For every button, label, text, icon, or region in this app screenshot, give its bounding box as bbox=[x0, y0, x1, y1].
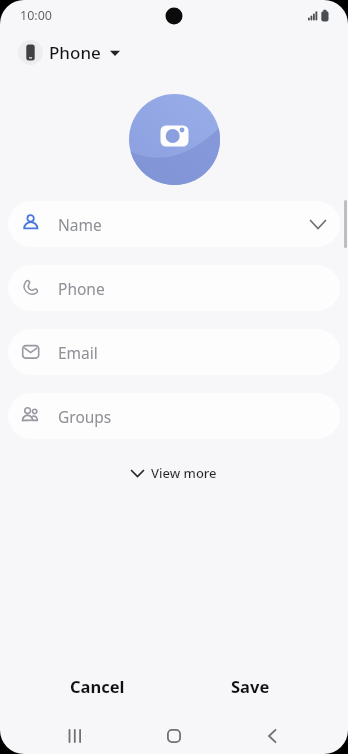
button[interactable]: Phone bbox=[18, 39, 120, 66]
staticText: View more bbox=[151, 464, 217, 482]
button[interactable]: Email bbox=[8, 329, 340, 375]
staticText: Groups bbox=[58, 406, 112, 427]
staticText: 10:00 bbox=[20, 7, 52, 24]
button[interactable] bbox=[53, 716, 97, 754]
staticText: Save bbox=[231, 675, 270, 697]
staticText: Name bbox=[58, 214, 102, 235]
staticText: Email bbox=[58, 342, 98, 363]
button[interactable]: Groups bbox=[8, 393, 340, 439]
staticText: Cancel bbox=[70, 675, 125, 697]
button[interactable]: Name bbox=[8, 201, 340, 247]
button[interactable] bbox=[250, 716, 294, 754]
button[interactable] bbox=[152, 716, 196, 754]
staticText: Phone bbox=[49, 41, 101, 64]
button[interactable]: View more bbox=[116, 459, 232, 487]
button[interactable]: Save bbox=[190, 664, 310, 708]
button[interactable]: Cancel bbox=[37, 664, 157, 708]
button[interactable]: Phone bbox=[8, 265, 340, 311]
staticText: Phone bbox=[58, 278, 105, 299]
button[interactable] bbox=[129, 94, 220, 185]
